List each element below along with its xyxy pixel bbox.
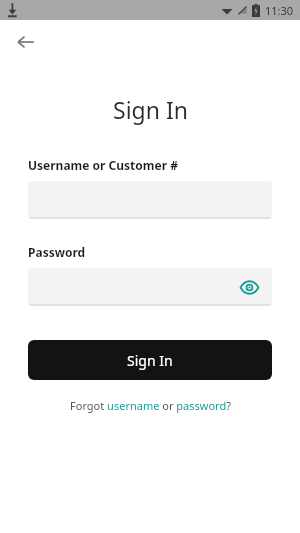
button[interactable]: Show password xyxy=(28,268,272,306)
button[interactable]: Sign In xyxy=(28,340,272,380)
button[interactable] xyxy=(28,181,272,219)
staticText: 11:30 xyxy=(265,3,294,18)
staticText: Sign In xyxy=(113,94,188,125)
button[interactable]: Forgot username or password? xyxy=(70,398,231,413)
button[interactable]: Show password xyxy=(236,274,262,300)
staticText: Password xyxy=(28,244,86,260)
staticText: Forgot username or password? xyxy=(70,398,231,413)
staticText: Sign In xyxy=(127,351,173,370)
button[interactable]: Back xyxy=(10,26,42,58)
staticText: Username or Customer # xyxy=(28,157,178,173)
